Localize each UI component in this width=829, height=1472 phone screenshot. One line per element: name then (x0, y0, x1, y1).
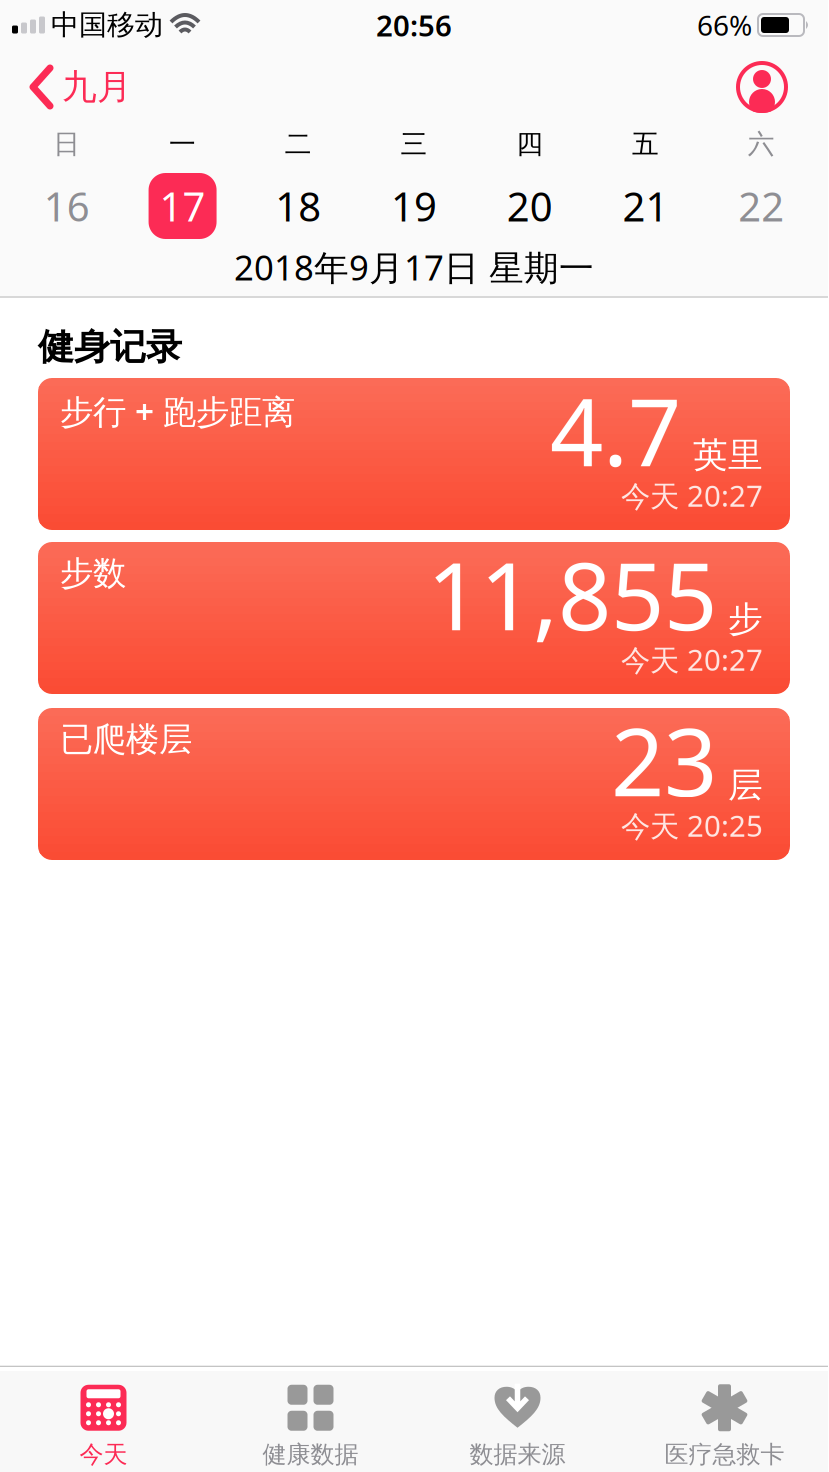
button[interactable]: 今天 (0, 1384, 207, 1469)
staticText: 21 (622, 179, 668, 232)
staticText: 16 (44, 179, 90, 232)
staticText: 20 (507, 179, 553, 232)
staticText: 中国移动 (51, 8, 163, 42)
staticText: 四 (516, 128, 543, 160)
button[interactable]: 步数 (38, 542, 790, 694)
staticText: 一 (169, 128, 196, 160)
staticText: 66% (697, 6, 752, 44)
staticText: 层 (728, 764, 763, 807)
staticText: 健身记录 (38, 325, 182, 369)
staticText: 17 (160, 179, 206, 232)
staticText: 三 (400, 128, 427, 160)
staticText: 4.7 (550, 368, 681, 492)
staticText: 数据来源 (469, 1440, 565, 1469)
staticText: 二 (285, 128, 312, 160)
staticText: 步数 (60, 553, 126, 594)
button[interactable]: 9月17日 (125, 169, 240, 243)
staticText: 11,855 (427, 532, 717, 656)
button[interactable]: 9月18日 (240, 169, 356, 243)
staticText: 18 (275, 179, 321, 232)
staticText: 医疗急救卡 (664, 1440, 784, 1469)
staticText: 23 (611, 698, 717, 822)
staticText: 九月 (62, 66, 132, 108)
button[interactable]: 9月22日 (703, 169, 819, 243)
staticText: 22 (738, 179, 784, 232)
staticText: 日 (53, 128, 80, 160)
staticText: 六 (748, 128, 775, 160)
staticText: 健康数据 (262, 1440, 358, 1469)
staticText: 今天 (79, 1440, 127, 1469)
staticText: 步行 + 跑步距离 (60, 389, 295, 433)
staticText: 已爬楼层 (60, 719, 192, 760)
button[interactable]: 步行 + 跑步距离 (38, 378, 790, 530)
staticText: 20:56 (376, 5, 452, 44)
button[interactable]: 健康数据 (207, 1384, 414, 1469)
button[interactable]: 9月21日 (588, 169, 703, 243)
button[interactable]: 已爬楼层 (38, 708, 790, 860)
staticText: 今天 20:27 (621, 476, 763, 515)
staticText: 今天 20:27 (621, 640, 763, 679)
staticText: 2018年9月17日 星期一 (234, 244, 594, 290)
button[interactable]: 医疗急救卡 (621, 1384, 828, 1469)
button[interactable]: 返回九月 (30, 66, 132, 108)
button[interactable]: 9月20日 (472, 169, 588, 243)
button[interactable]: 个人资料 (736, 61, 788, 113)
button[interactable]: 9月16日 (9, 169, 125, 243)
button[interactable]: 9月19日 (356, 169, 472, 243)
staticText: 19 (391, 179, 437, 232)
staticText: 五 (632, 128, 659, 160)
staticText: 步 (728, 598, 763, 641)
staticText: 英里 (693, 434, 763, 477)
button[interactable]: 数据来源 (414, 1384, 621, 1469)
staticText: 今天 20:25 (621, 806, 763, 845)
